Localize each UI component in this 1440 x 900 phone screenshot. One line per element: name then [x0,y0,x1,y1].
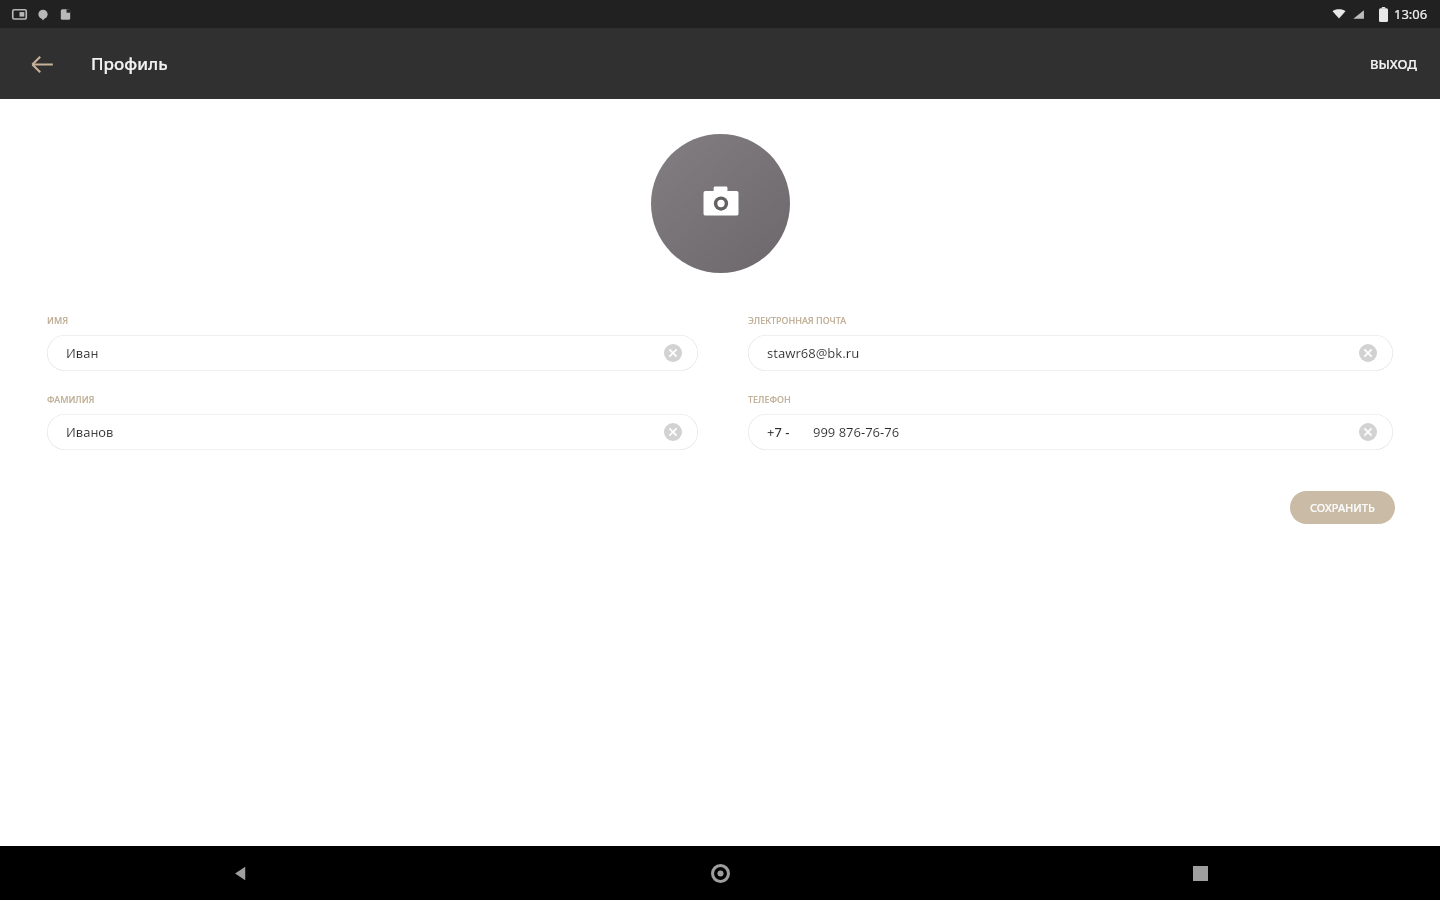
button[interactable]: Иванов [47,414,698,450]
staticText: stawr68@bk.ru [767,344,860,362]
staticText: ФАМИЛИЯ [47,393,95,405]
staticText: 999 876-76-76 [813,423,900,441]
staticText: ВЫХОД [1370,55,1417,73]
button[interactable]: +7 - [748,414,1393,450]
staticText: 13:06 [1394,5,1428,23]
staticText: Профиль [91,52,168,75]
button[interactable]: Иван [47,335,698,371]
staticText: Иван [66,344,99,362]
button[interactable]: Change photo [651,134,790,273]
button[interactable]: Recent apps [960,846,1440,900]
button[interactable]: stawr68@bk.ru [748,335,1393,371]
button[interactable]: Back [20,42,64,86]
button[interactable]: ВЫХОД [1357,45,1430,83]
button[interactable]: Back [0,846,480,900]
button[interactable]: Clear ИМЯ [661,341,685,365]
staticText: +7 - [767,423,790,441]
button[interactable]: СОХРАНИТЬ [1290,491,1395,524]
staticText: Иванов [66,423,114,441]
button[interactable]: Home [480,846,960,900]
staticText: СОХРАНИТЬ [1310,500,1375,515]
staticText: ИМЯ [47,314,69,326]
button[interactable]: Clear ЭЛЕКТРОННАЯ ПОЧТА [1356,341,1380,365]
staticText: ЭЛЕКТРОННАЯ ПОЧТА [748,314,847,326]
button[interactable]: Clear ФАМИЛИЯ [661,420,685,444]
staticText: ТЕЛЕФОН [748,393,791,405]
button[interactable]: Clear ТЕЛЕФОН [1356,420,1380,444]
